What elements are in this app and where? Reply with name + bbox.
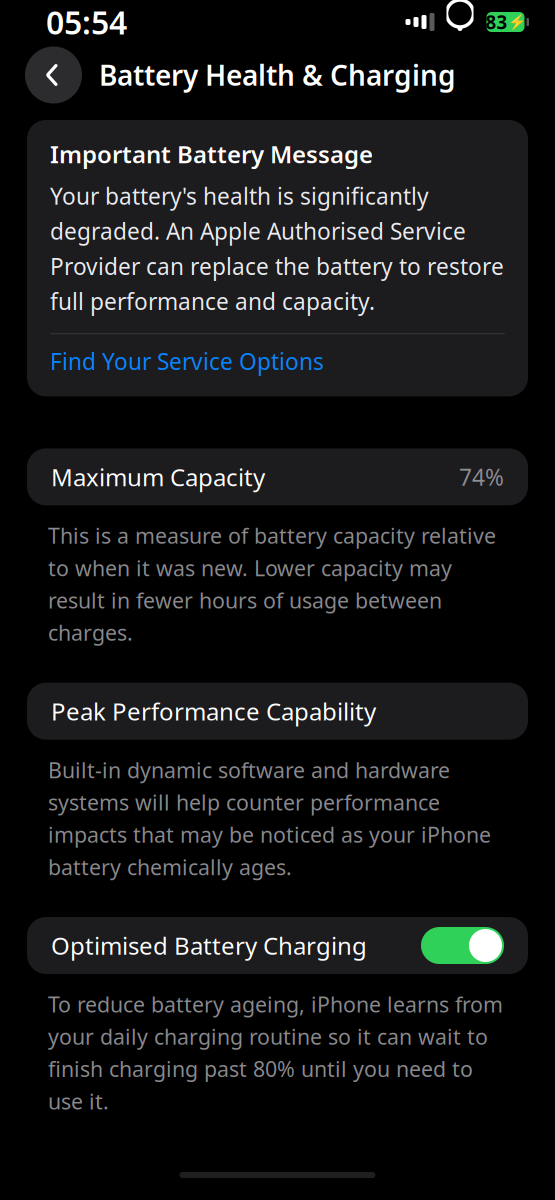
- staticText: Important Battery Message: [50, 138, 373, 170]
- staticText: Find Your Service Options: [50, 346, 324, 376]
- staticText: Your battery's health is significantly d…: [50, 181, 504, 316]
- button[interactable]: Back: [25, 46, 82, 103]
- staticText: Battery Health & Charging: [99, 56, 456, 94]
- staticText: 74%: [459, 462, 504, 492]
- staticText: Peak Performance Capability: [51, 695, 376, 727]
- staticText: ⚡: [507, 14, 525, 30]
- staticText: 83: [485, 10, 507, 34]
- staticText: Optimised Battery Charging: [51, 930, 367, 961]
- staticText: To reduce battery ageing, iPhone learns …: [48, 990, 503, 1115]
- staticText: Built-in dynamic software and hardware s…: [48, 756, 491, 881]
- staticText: 05:54: [46, 1, 127, 43]
- button[interactable]: Find Your Service Options: [50, 334, 505, 388]
- button[interactable]: Optimised Battery Charging, on: [421, 927, 504, 964]
- staticText: Maximum Capacity: [51, 461, 265, 493]
- button[interactable]: Peak Performance Capability: [27, 683, 528, 740]
- staticText: This is a measure of battery capacity re…: [48, 521, 496, 647]
